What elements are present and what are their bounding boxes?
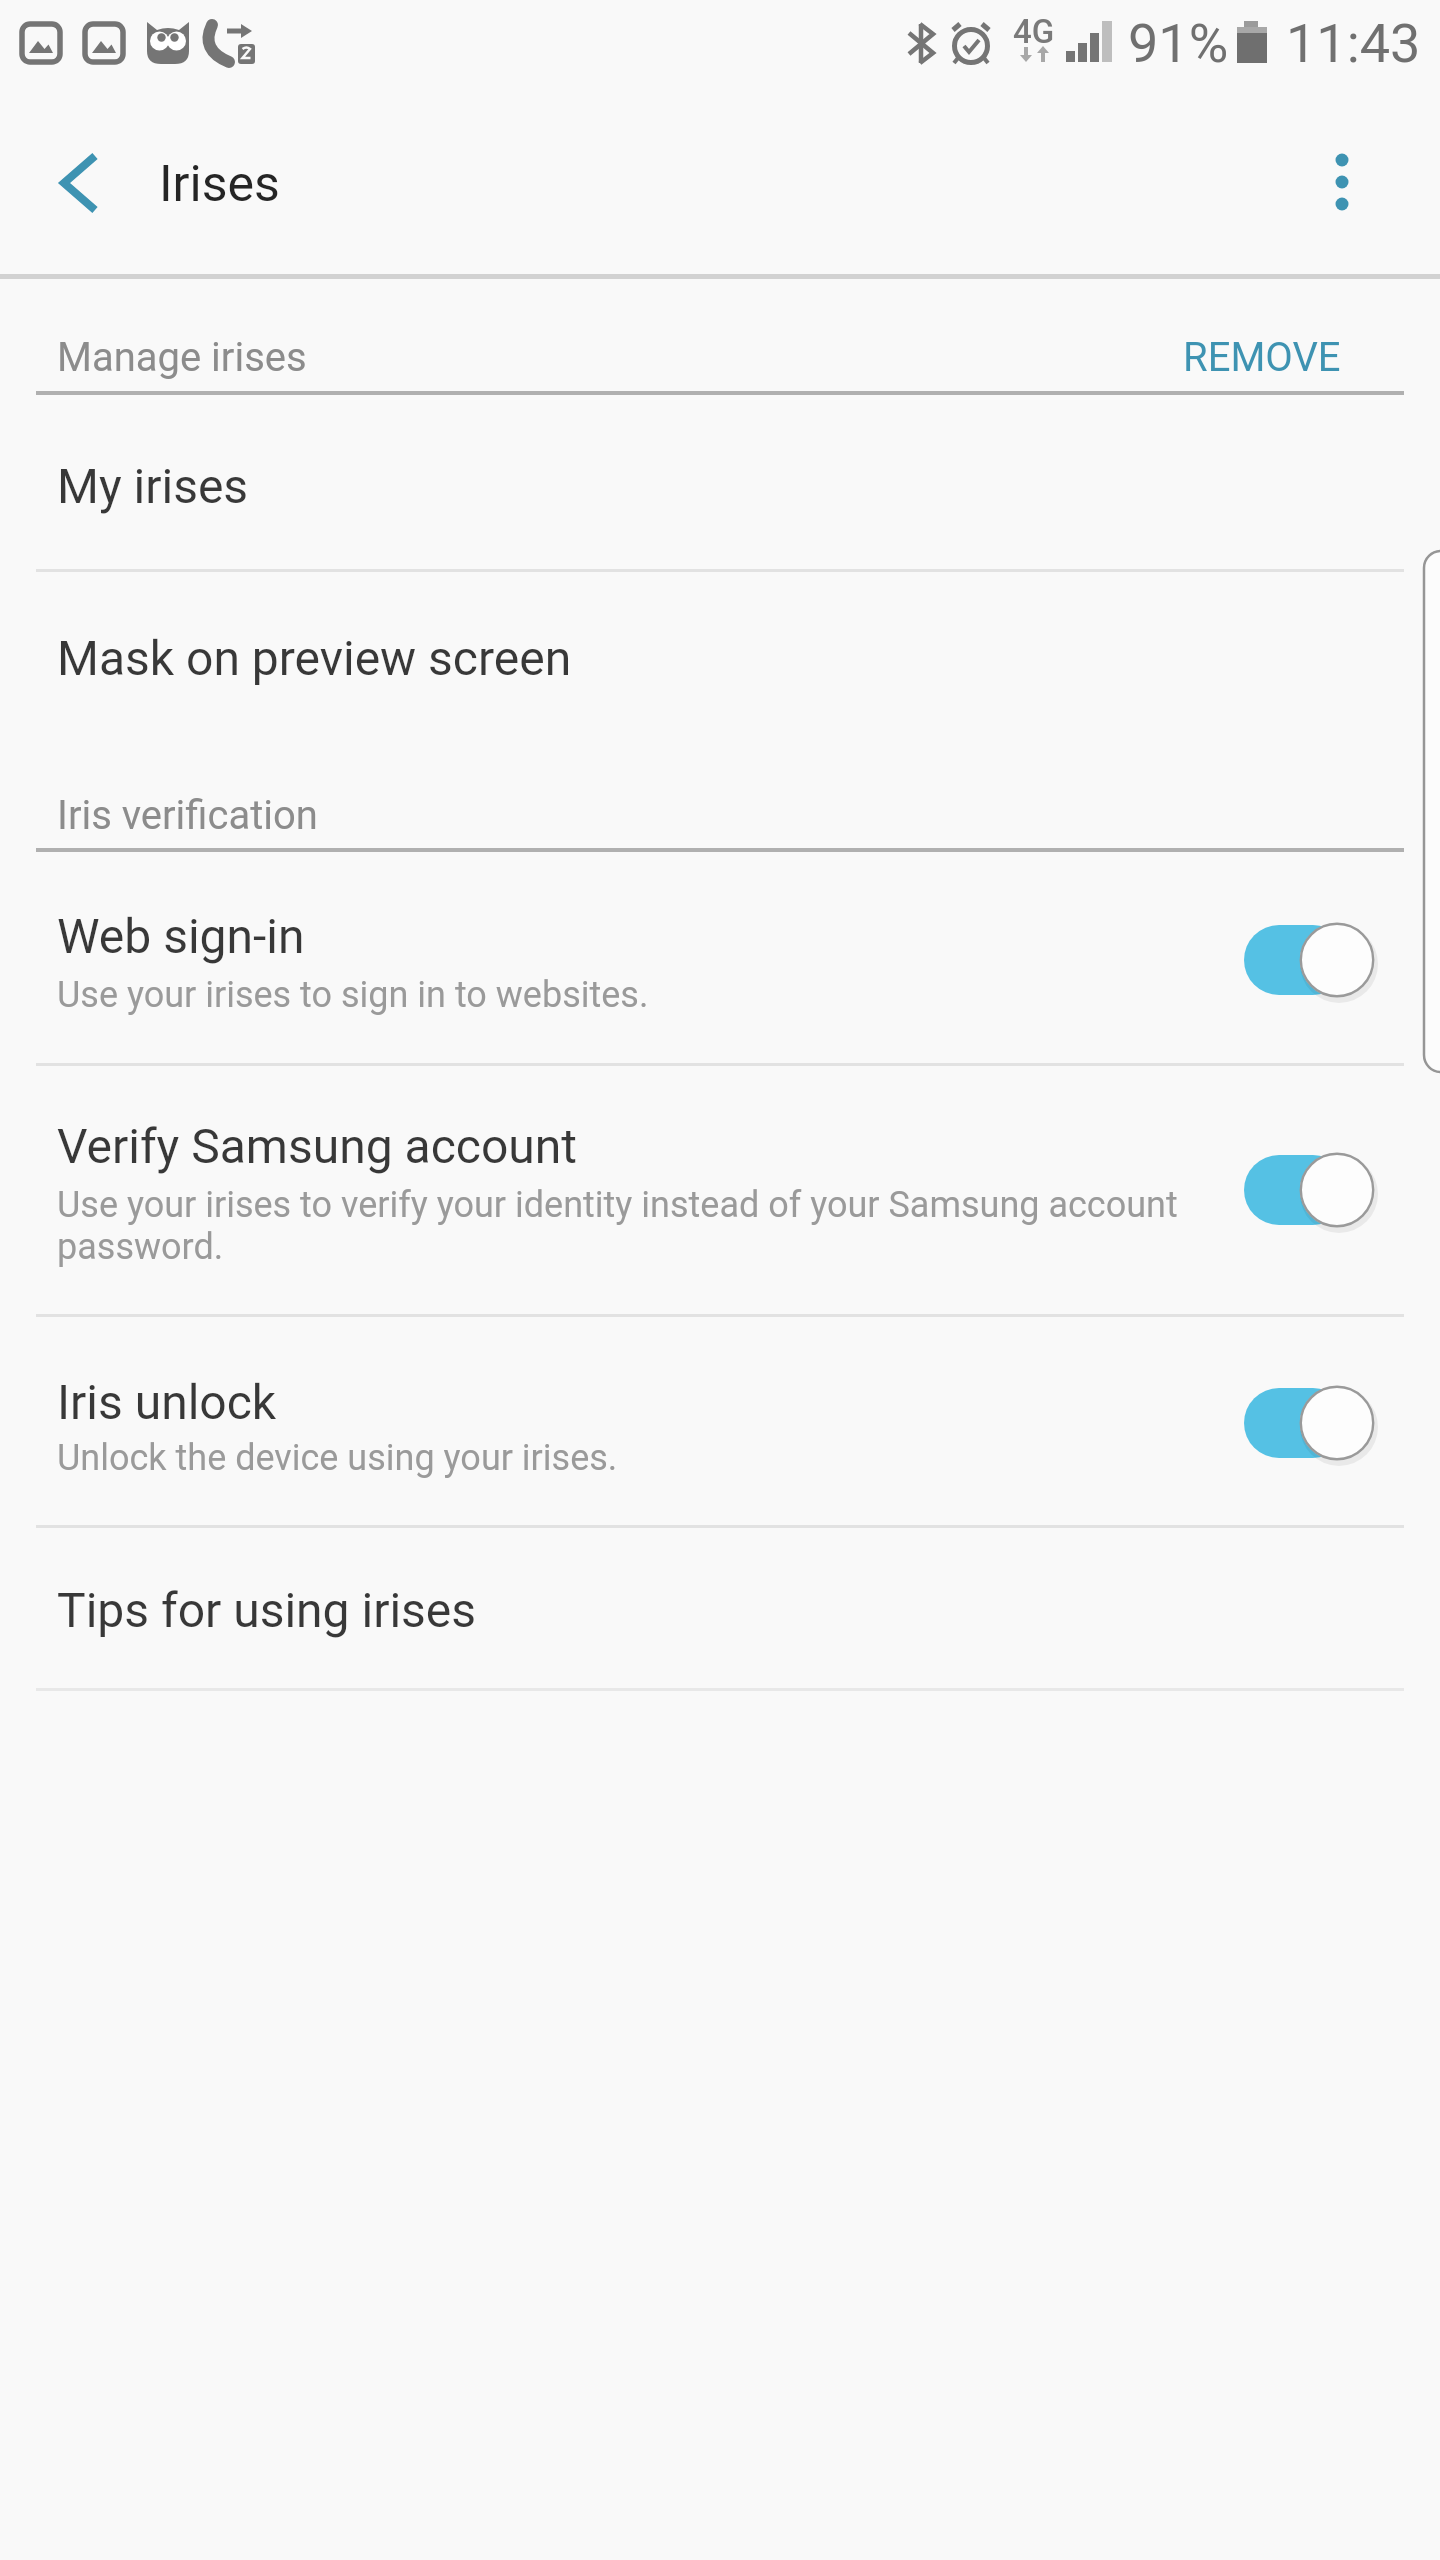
button[interactable]: REMOVE — [1041, 307, 1341, 407]
button[interactable] — [1230, 1145, 1390, 1235]
button[interactable]: Iris unlock — [0, 1317, 1440, 1525]
staticText: My irises — [57, 458, 249, 514]
button[interactable]: Tips for using irises — [0, 1528, 1440, 1688]
staticText: REMOVE — [1183, 334, 1341, 381]
staticText: 4G — [1013, 12, 1055, 51]
staticText: password. — [57, 1226, 224, 1268]
staticText: Manage irises — [57, 334, 307, 381]
staticText: Iris unlock — [57, 1374, 277, 1430]
staticText: Irises — [159, 155, 280, 214]
button[interactable] — [20, 120, 140, 244]
button[interactable] — [1230, 1378, 1390, 1468]
button[interactable] — [1230, 915, 1390, 1005]
staticText: Tips for using irises — [57, 1582, 477, 1638]
staticText: Verify Samsung account — [57, 1118, 577, 1174]
staticText: Iris verification — [57, 792, 318, 839]
button[interactable]: Verify Samsung account — [0, 1066, 1440, 1314]
staticText: Use your irises to sign in to websites. — [57, 974, 649, 1016]
staticText: Web sign-in — [57, 908, 305, 964]
staticText: Use your irises to verify your identity … — [57, 1184, 1178, 1226]
staticText: 11:43 — [1286, 12, 1421, 75]
staticText: Mask on preview screen — [57, 630, 572, 686]
staticText: 91% — [1128, 12, 1229, 75]
button[interactable]: Web sign-in — [0, 852, 1440, 1063]
button[interactable]: My irises — [0, 395, 1440, 569]
staticText: Unlock the device using your irises. — [57, 1437, 618, 1479]
button[interactable] — [1294, 126, 1394, 242]
button[interactable]: Mask on preview screen — [0, 572, 1440, 746]
